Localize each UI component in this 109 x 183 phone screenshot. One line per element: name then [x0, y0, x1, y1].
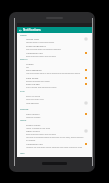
button[interactable]: Navigate up — [17, 27, 23, 33]
staticText: Get an email when something happens — [26, 48, 61, 51]
button[interactable]: Clear history — [17, 112, 92, 118]
staticText: Leave a review on the store — [26, 127, 51, 129]
button[interactable]: Mobile data — [17, 37, 92, 44]
button[interactable]: Show notifications — [17, 44, 92, 51]
staticText: STORAGE — [20, 108, 29, 111]
staticText: Only sync over Wi-Fi — [26, 98, 44, 101]
staticText: Licences for the open source libraries a… — [26, 146, 83, 149]
button[interactable]: Theme — [17, 62, 92, 68]
button[interactable]: This app is provided without warranty of… — [17, 136, 92, 142]
staticText: Privacy policy — [26, 124, 41, 127]
staticText: Open source — [26, 130, 40, 133]
button[interactable]: Send feedback — [17, 68, 92, 76]
staticText: Send feedback — [26, 69, 42, 72]
staticText: Data usage — [26, 77, 39, 80]
staticText: Notifications — [23, 28, 41, 32]
staticText: Mobile data — [26, 38, 39, 41]
staticText: Notification dot — [26, 52, 43, 55]
staticText: Read how we collect and use data — [26, 133, 56, 136]
button[interactable]: Sync on Wi-Fi — [17, 94, 92, 101]
button[interactable]: Notification dot — [17, 142, 92, 151]
button[interactable]: Data usage — [17, 76, 92, 82]
staticText: ABOUT — [20, 119, 27, 122]
staticText: DISPLAY — [20, 58, 28, 61]
button[interactable]: Rate the app — [17, 82, 92, 89]
staticText: ALERTS — [20, 34, 27, 37]
button[interactable]: Notification dot — [17, 51, 92, 58]
staticText: Play a sound and vibrate for alerts — [26, 86, 57, 89]
staticText: Off — [26, 66, 29, 68]
staticText: Reduce background usage — [26, 80, 50, 82]
staticText: This app is provided without warranty of… — [26, 136, 84, 141]
staticText: Sync on Wi-Fi — [26, 95, 41, 98]
staticText: Use the system light or dark setting and… — [26, 72, 81, 75]
staticText: App version — [26, 102, 39, 105]
staticText: HELP — [20, 152, 25, 155]
staticText: Internal storage — [26, 116, 41, 118]
staticText: Theme — [26, 63, 34, 66]
staticText: Clear history — [26, 113, 40, 116]
button[interactable]: App version — [17, 101, 92, 107]
staticText: Notification dot — [26, 143, 43, 146]
staticText: Vibrate when a message arrives — [26, 41, 55, 44]
staticText: Show notifications — [26, 45, 46, 48]
button[interactable]: Open source — [17, 129, 92, 136]
button[interactable]: Privacy policy — [17, 123, 92, 129]
staticText: SYNC — [20, 90, 25, 93]
staticText: Read how we collect and use data — [26, 55, 56, 58]
staticText: Rate the app — [26, 83, 40, 86]
